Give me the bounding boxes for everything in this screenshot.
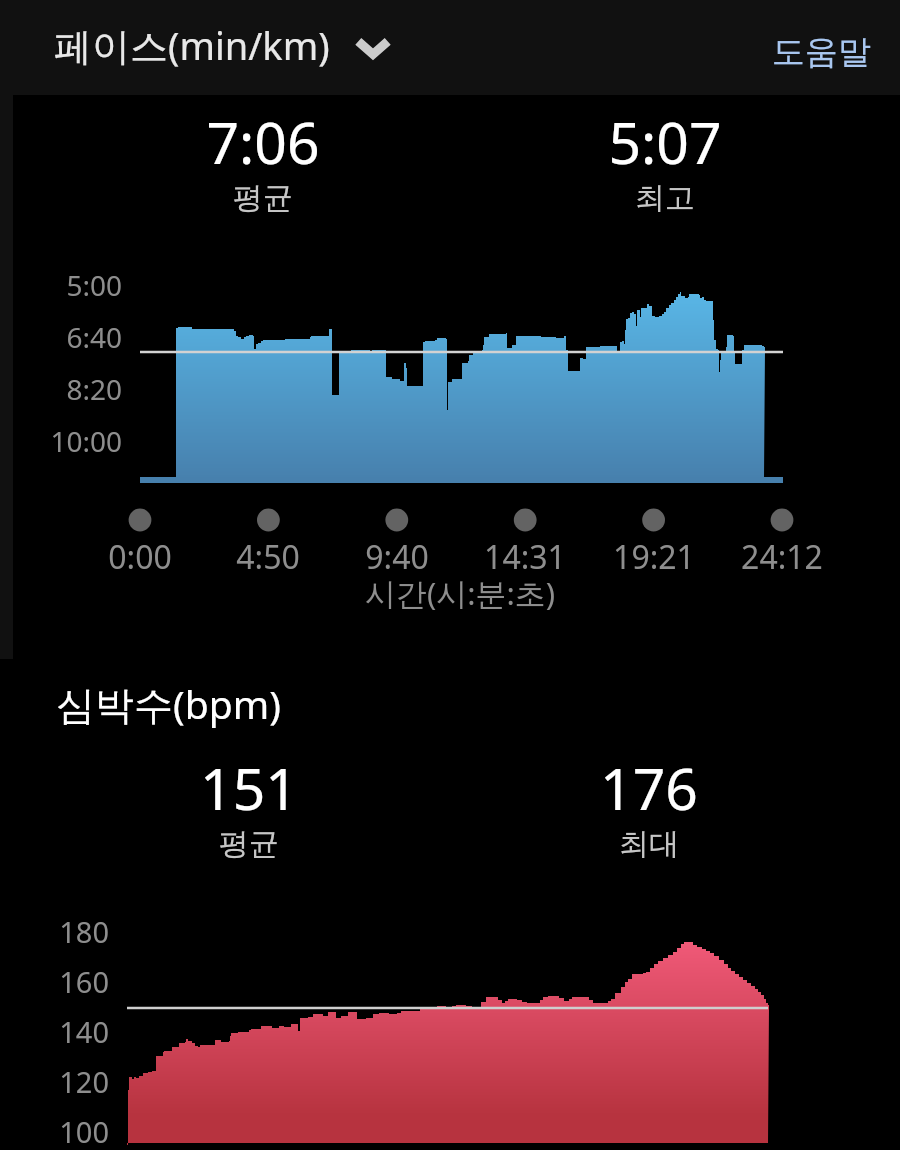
staticText: 시간(시:분:초) — [260, 572, 660, 614]
staticText: 14:31 — [325, 535, 725, 579]
staticText: 24:12 — [582, 535, 900, 579]
staticText: 도움말 — [772, 31, 871, 73]
staticText: 160 — [0, 962, 109, 1001]
staticText: 5:00 — [0, 266, 122, 304]
button[interactable]: 페이스(min/km) — [40, 12, 402, 82]
staticText: 9:40 — [197, 535, 597, 579]
staticText: 최고 — [465, 179, 865, 217]
staticText: 8:20 — [0, 370, 122, 408]
staticText: 0:00 — [0, 535, 340, 579]
staticText: 5:07 — [465, 103, 865, 181]
staticText: 19:21 — [454, 535, 854, 579]
staticText: 180 — [0, 912, 109, 951]
staticText: 최대 — [449, 825, 849, 863]
staticText: 페이스(min/km) — [54, 19, 330, 71]
staticText: 심박수(bpm) — [56, 677, 281, 730]
button[interactable]: 도움말 — [763, 19, 879, 85]
staticText: 4:50 — [68, 535, 468, 579]
staticText: 7:06 — [63, 103, 463, 181]
staticText: 151 — [49, 749, 449, 827]
staticText: 6:40 — [0, 318, 122, 356]
staticText: 176 — [449, 749, 849, 827]
staticText: 평균 — [49, 825, 449, 863]
staticText: 평균 — [63, 179, 463, 217]
staticText: 120 — [0, 1062, 109, 1101]
staticText: 100 — [0, 1112, 109, 1150]
staticText: 10:00 — [0, 422, 122, 460]
staticText: 140 — [0, 1012, 109, 1051]
